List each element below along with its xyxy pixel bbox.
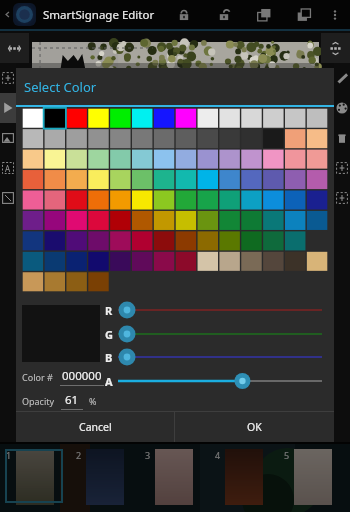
- button[interactable]: Swatch 0-3: [88, 108, 110, 128]
- button[interactable]: Text tool: [0, 153, 16, 183]
- button[interactable]: Shape tool: [0, 183, 16, 213]
- button[interactable]: Swatch 2-9: [220, 148, 242, 168]
- button[interactable]: Page 4: [212, 447, 276, 507]
- button[interactable]: Swatch 3-8: [198, 168, 220, 188]
- button[interactable]: Swatch 8-7: [176, 268, 198, 288]
- button[interactable]: Swatch 7-4: [110, 248, 132, 268]
- button[interactable]: Swatch 7-8: [198, 248, 220, 268]
- button[interactable]: Swatch 7-3: [88, 248, 110, 268]
- button[interactable]: Swatch 1-5: [132, 128, 154, 148]
- button[interactable]: B channel slider: [116, 346, 324, 368]
- button[interactable]: Pan vertically: [321, 33, 350, 63]
- button[interactable]: Swatch 3-12: [286, 168, 308, 188]
- button[interactable]: Swatch 4-9: [220, 188, 242, 208]
- button[interactable]: Page 5: [281, 447, 345, 507]
- button[interactable]: Swatch 1-0: [22, 128, 44, 148]
- button[interactable]: Swatch 4-4: [110, 188, 132, 208]
- button[interactable]: Group: [334, 153, 350, 183]
- button[interactable]: Swatch 6-2: [66, 228, 88, 248]
- button[interactable]: Swatch 5-5: [132, 208, 154, 228]
- button[interactable]: Swatch 8-10: [242, 268, 264, 288]
- button[interactable]: Swatch 0-0: [22, 108, 44, 128]
- button[interactable]: Swatch 6-12: [286, 228, 308, 248]
- button[interactable]: Cancel: [16, 412, 174, 442]
- button[interactable]: Swatch 1-10: [242, 128, 264, 148]
- button[interactable]: Swatch 4-1: [44, 188, 66, 208]
- button[interactable]: Swatch 8-11: [264, 268, 286, 288]
- button[interactable]: Swatch 1-11: [264, 128, 286, 148]
- button[interactable]: Swatch 3-2: [66, 168, 88, 188]
- button[interactable]: Swatch 4-8: [198, 188, 220, 208]
- button[interactable]: Swatch 2-6: [154, 148, 176, 168]
- button[interactable]: Swatch 2-2: [66, 148, 88, 168]
- button[interactable]: Swatch 3-13: [308, 168, 328, 188]
- button[interactable]: Swatch 8-5: [132, 268, 154, 288]
- button[interactable]: Swatch 5-7: [176, 208, 198, 228]
- button[interactable]: Swatch 2-5: [132, 148, 154, 168]
- button[interactable]: Swatch 0-1: [44, 108, 66, 128]
- button[interactable]: Select Color: [16, 68, 334, 105]
- button[interactable]: Send backward: [244, 0, 284, 29]
- button[interactable]: Swatch 4-11: [264, 188, 286, 208]
- button[interactable]: Swatch 6-6: [154, 228, 176, 248]
- button[interactable]: Swatch 7-0: [22, 248, 44, 268]
- button[interactable]: Swatch 5-2: [66, 208, 88, 228]
- button[interactable]: Swatch 3-5: [132, 168, 154, 188]
- button[interactable]: Swatch 1-7: [176, 128, 198, 148]
- button[interactable]: Swatch 7-9: [220, 248, 242, 268]
- button[interactable]: Swatch 6-11: [264, 228, 286, 248]
- button[interactable]: Swatch 7-12: [286, 248, 308, 268]
- button[interactable]: Swatch 0-11: [264, 108, 286, 128]
- button[interactable]: Swatch 8-2: [66, 268, 88, 288]
- button[interactable]: Swatch 2-7: [176, 148, 198, 168]
- button[interactable]: Crop tool: [0, 63, 16, 93]
- button[interactable]: Swatch 0-8: [198, 108, 220, 128]
- button[interactable]: Swatch 1-12: [286, 128, 308, 148]
- button[interactable]: Swatch 1-3: [88, 128, 110, 148]
- button[interactable]: Swatch 8-6: [154, 268, 176, 288]
- button[interactable]: Distribute: [334, 183, 350, 213]
- button[interactable]: Swatch 1-1: [44, 128, 66, 148]
- button[interactable]: Swatch 6-8: [198, 228, 220, 248]
- button[interactable]: R channel slider: [116, 299, 324, 321]
- button[interactable]: Swatch 2-1: [44, 148, 66, 168]
- button[interactable]: Fill bucket: [334, 123, 350, 153]
- button[interactable]: Swatch 4-0: [22, 188, 44, 208]
- button[interactable]: Pen tool: [334, 63, 350, 93]
- button[interactable]: Swatch 2-8: [198, 148, 220, 168]
- button[interactable]: Swatch 1-9: [220, 128, 242, 148]
- button[interactable]: Pan horizontally: [0, 33, 29, 63]
- button[interactable]: Swatch 0-6: [154, 108, 176, 128]
- button[interactable]: Swatch 5-1: [44, 208, 66, 228]
- button[interactable]: Swatch 0-9: [220, 108, 242, 128]
- button[interactable]: Swatch 4-12: [286, 188, 308, 208]
- button[interactable]: Swatch 1-13: [308, 128, 328, 148]
- button[interactable]: Swatch 7-13: [308, 248, 328, 268]
- button[interactable]: Page 1 selected: [5, 449, 63, 503]
- button[interactable]: A channel slider: [116, 370, 324, 392]
- button[interactable]: Swatch 5-6: [154, 208, 176, 228]
- button[interactable]: Swatch 0-2: [66, 108, 88, 128]
- button[interactable]: Swatch 0-13: [308, 108, 328, 128]
- button[interactable]: Swatch 8-4: [110, 268, 132, 288]
- button[interactable]: More options: [324, 0, 346, 29]
- button[interactable]: Swatch 1-2: [66, 128, 88, 148]
- button[interactable]: Swatch 8-13: [308, 268, 328, 288]
- button[interactable]: Swatch 5-12: [286, 208, 308, 228]
- button[interactable]: Swatch 0-5: [132, 108, 154, 128]
- button[interactable]: Swatch 7-11: [264, 248, 286, 268]
- button[interactable]: Swatch 0-12: [286, 108, 308, 128]
- button[interactable]: Swatch 8-3: [88, 268, 110, 288]
- button[interactable]: Swatch 3-9: [220, 168, 242, 188]
- button[interactable]: Swatch 3-1: [44, 168, 66, 188]
- button[interactable]: Bring forward: [284, 0, 324, 29]
- button[interactable]: App icon: [13, 3, 36, 26]
- button[interactable]: Swatch 6-3: [88, 228, 110, 248]
- button[interactable]: Swatch 6-0: [22, 228, 44, 248]
- button[interactable]: Unlock layer: [204, 0, 244, 29]
- button[interactable]: Image tool: [0, 123, 16, 153]
- button[interactable]: Swatch 3-10: [242, 168, 264, 188]
- button[interactable]: Swatch 5-9: [220, 208, 242, 228]
- button[interactable]: Page 2: [73, 447, 137, 507]
